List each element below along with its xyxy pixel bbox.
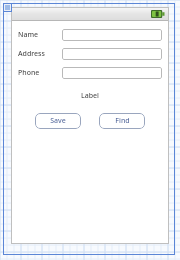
button[interactable] bbox=[62, 29, 162, 41]
button[interactable]: Resize handle bbox=[3, 3, 12, 12]
staticText: Phone bbox=[18, 68, 40, 78]
staticText: Address bbox=[18, 49, 45, 59]
staticText: Name bbox=[18, 30, 39, 40]
staticText: Label bbox=[18, 91, 162, 101]
button[interactable] bbox=[62, 48, 162, 60]
button[interactable]: Find bbox=[99, 113, 145, 129]
button[interactable]: Save bbox=[35, 113, 81, 129]
staticText: Save bbox=[50, 116, 66, 126]
button[interactable]: Battery status bbox=[151, 10, 165, 18]
staticText: Find bbox=[115, 116, 130, 126]
button[interactable] bbox=[62, 67, 162, 79]
